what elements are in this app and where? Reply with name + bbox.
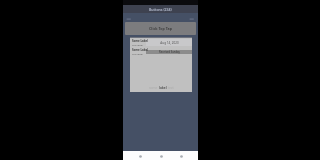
staticText: Sub label [132, 52, 143, 55]
staticText: Some Label [132, 39, 148, 43]
button[interactable]: some [130, 85, 192, 91]
staticText: Sub label [132, 43, 143, 46]
staticText: Received Sunday [159, 50, 180, 54]
button[interactable]: Aug 14, 2020 [130, 38, 192, 46]
staticText: Aug 14, 2020 [160, 41, 179, 45]
staticText: some [149, 86, 159, 90]
button[interactable]: Back [136, 152, 144, 160]
staticText: Some Label [132, 48, 148, 52]
staticText: Buttons (234) [149, 7, 172, 12]
staticText: label [159, 86, 167, 90]
button[interactable]: Next [189, 16, 195, 21]
button[interactable]: Recent apps [177, 152, 185, 160]
button[interactable]: Received Sunday [130, 47, 192, 55]
button[interactable]: Home [157, 152, 165, 160]
staticText: text [167, 86, 174, 90]
staticText: Click Top Tap [149, 26, 172, 31]
button[interactable]: Click Top Tap [125, 22, 196, 35]
button[interactable]: Previous [126, 16, 132, 21]
